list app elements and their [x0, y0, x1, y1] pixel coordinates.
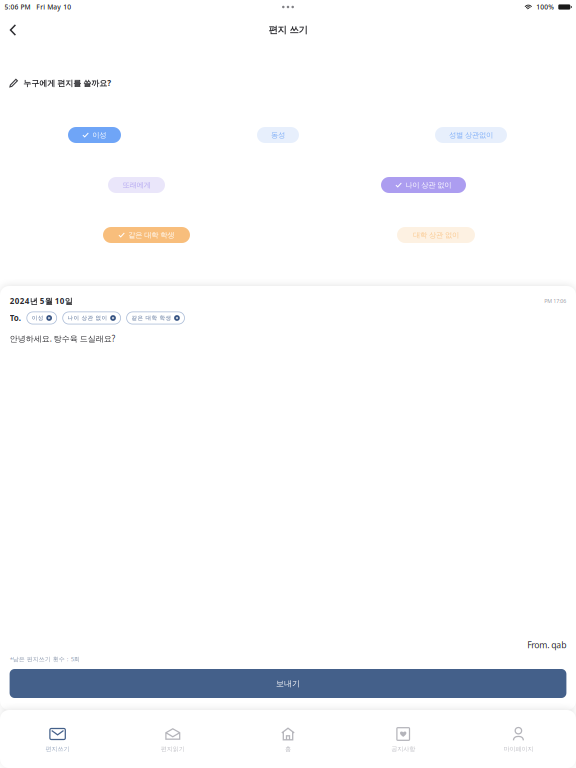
- staticText: 또래에게: [122, 180, 150, 190]
- staticText: 성별 상관없이: [449, 130, 493, 140]
- staticText: 5:06 PM: [5, 2, 31, 12]
- button[interactable]: 홈: [230, 710, 346, 768]
- staticText: Fri May 10: [36, 2, 71, 12]
- button[interactable]: 공지사항: [346, 710, 461, 768]
- staticText: 나이 상관 없이: [68, 314, 108, 322]
- staticText: 마이페이지: [503, 745, 533, 753]
- button[interactable]: 대학 상관 없이: [397, 227, 475, 243]
- button[interactable]: 편지쓰기: [0, 710, 115, 768]
- staticText: 편지읽기: [161, 745, 185, 753]
- staticText: 편지쓰기: [46, 745, 70, 753]
- button[interactable]: 나이 상관 없이: [381, 177, 466, 193]
- button[interactable]: 편지읽기: [115, 710, 230, 768]
- staticText: 대학 상관 없이: [413, 230, 459, 240]
- staticText: From. qab: [527, 639, 566, 651]
- staticText: 나이 상관 없이: [405, 180, 451, 190]
- staticText: To.: [10, 312, 21, 323]
- staticText: 편지 쓰기: [268, 24, 307, 36]
- staticText: 이성: [92, 130, 106, 140]
- staticText: 이성: [32, 314, 44, 322]
- staticText: 동성: [271, 130, 285, 140]
- staticText: 같은 대학 학생: [131, 314, 171, 322]
- button[interactable]: 또래에게: [108, 177, 165, 193]
- button[interactable]: 마이페이지: [461, 710, 576, 768]
- button[interactable]: 같은 대학 학생: [103, 227, 190, 243]
- staticText: 안녕하세요. 탕수육 드실래요?: [10, 333, 115, 344]
- staticText: 홈: [285, 745, 291, 753]
- button[interactable]: 동성: [257, 127, 299, 143]
- staticText: PM 17:06: [544, 297, 566, 304]
- button[interactable]: 보내기: [10, 669, 566, 698]
- button[interactable]: 뒤로: [3, 18, 23, 42]
- staticText: 2024년 5월 10일: [10, 295, 73, 306]
- button[interactable]: 성별 상관없이: [435, 127, 507, 143]
- staticText: 같은 대학 학생: [128, 230, 174, 240]
- staticText: 보내기: [276, 679, 300, 688]
- button[interactable]: 이성: [68, 127, 121, 143]
- staticText: 누구에게 편지를 쓸까요?: [23, 78, 111, 88]
- staticText: 공지사항: [391, 745, 415, 753]
- staticText: *남은 편지쓰기 횟수 : 5회: [10, 655, 80, 663]
- staticText: 100%: [536, 2, 554, 12]
